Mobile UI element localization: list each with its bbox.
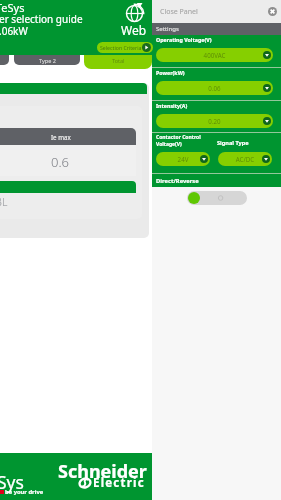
staticText: AC/DC (218, 155, 272, 163)
staticText: Close Panel (160, 7, 198, 17)
staticText: 3L (0, 195, 8, 209)
staticText: Electric (93, 475, 145, 491)
staticText: Signal Type (217, 139, 249, 147)
button[interactable]: 0.20 (156, 114, 273, 128)
button[interactable]: Close Panel (152, 0, 281, 23)
staticText: 0.06 (156, 84, 273, 92)
button[interactable]: Web (121, 2, 147, 39)
staticText: .06kW (0, 24, 28, 38)
button[interactable]: AC/DC (218, 152, 272, 166)
staticText: Ie max (51, 133, 71, 141)
button[interactable]: Direct Reverse toggle (187, 191, 247, 205)
button[interactable]: Selection Criteria (97, 42, 153, 53)
staticText: TeSys (0, 0, 25, 15)
button[interactable]: 400VAC (156, 48, 273, 62)
button[interactable]: 0.06 (156, 81, 273, 95)
staticText: Web (121, 22, 147, 38)
button[interactable]: 24V (156, 152, 210, 166)
staticText: Contactor Control Voltage(V) (156, 134, 201, 147)
staticText: er selection guide (0, 12, 83, 26)
staticText: 24V (156, 155, 210, 163)
staticText: Selection Criteria (100, 44, 142, 51)
button[interactable]: Total (84, 55, 152, 69)
staticText: Operating Voltage(V) (156, 36, 212, 43)
staticText: Intensity(A) (156, 102, 188, 109)
staticText: Schneider (58, 459, 147, 484)
staticText: be your drive (5, 488, 44, 496)
staticText: 400VAC (156, 51, 273, 59)
staticText: 0.20 (156, 117, 273, 125)
staticText: Total (112, 57, 125, 64)
staticText: Sys (0, 470, 24, 494)
button[interactable] (0, 55, 9, 65)
staticText: 0.6 (51, 153, 70, 171)
button[interactable]: Type 2 (14, 55, 80, 65)
staticText: Settings (156, 25, 179, 33)
staticText: Direct/Reverse (156, 177, 199, 185)
staticText: Power(kW) (156, 69, 185, 76)
staticText: Type 2 (39, 57, 56, 64)
